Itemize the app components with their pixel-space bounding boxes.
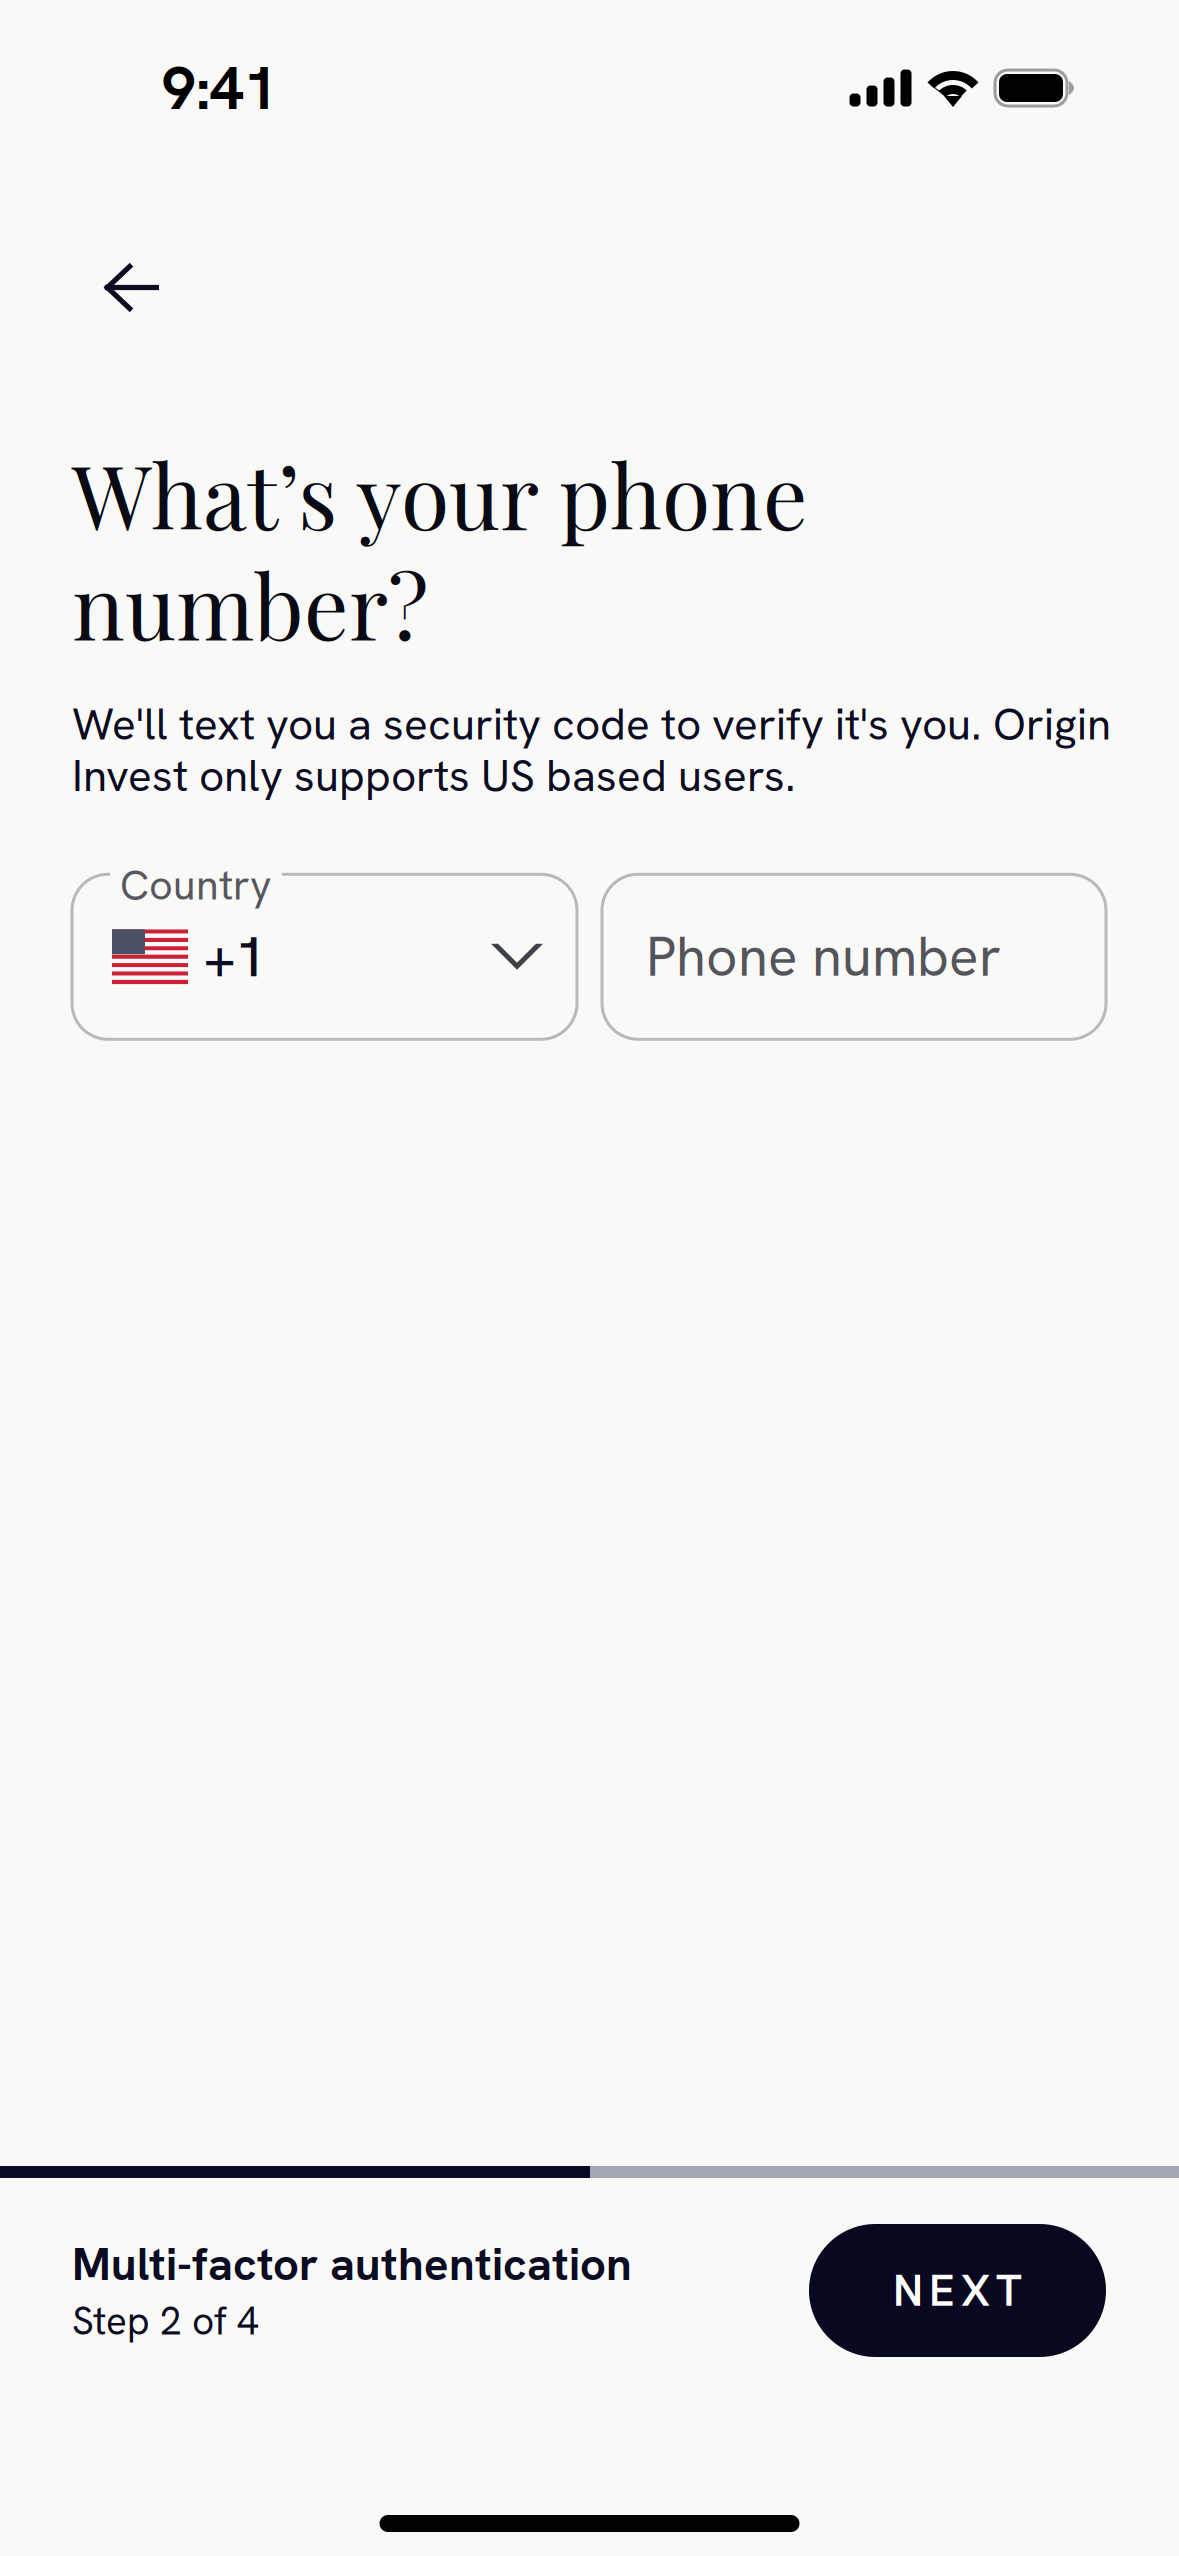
button[interactable]: Phone number <box>602 874 1106 1039</box>
staticText: 9:41 <box>162 49 278 127</box>
staticText: +1 <box>204 920 266 993</box>
button[interactable]: Country code, United States plus 1 <box>72 874 577 1039</box>
staticText: What’s your phone number? <box>72 435 808 663</box>
staticText: Phone number <box>646 921 1001 992</box>
staticText: We'll text you a security code to verify… <box>72 696 1111 804</box>
staticText: Multi-factor authentication <box>72 2235 632 2294</box>
staticText: Step 2 of 4 <box>72 2296 259 2346</box>
staticText: NEXT <box>893 2262 1022 2319</box>
button[interactable]: NEXT <box>809 2224 1106 2357</box>
staticText: Country <box>120 858 272 912</box>
button[interactable]: Back <box>0 176 207 350</box>
